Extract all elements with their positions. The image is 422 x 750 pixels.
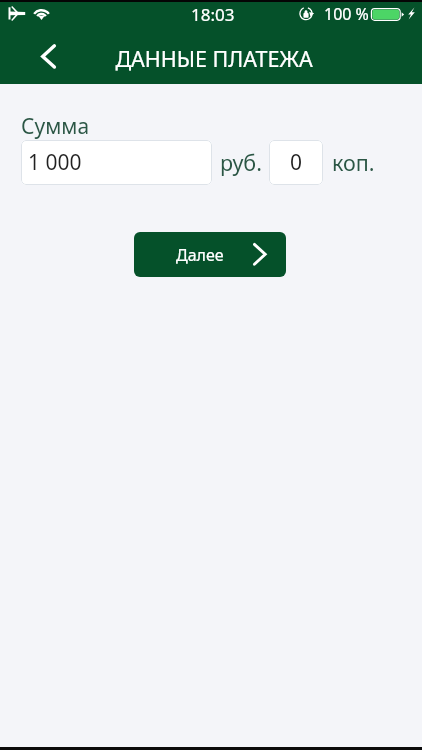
staticText: 0 <box>290 148 303 177</box>
button[interactable]: Back <box>20 32 74 80</box>
staticText: Сумма <box>21 112 90 141</box>
staticText: 18:03 <box>191 3 235 26</box>
staticText: 1 000 <box>28 148 82 177</box>
button[interactable]: 0 <box>269 140 323 185</box>
button[interactable]: Далее <box>134 232 286 277</box>
staticText: Далее <box>176 244 224 266</box>
button[interactable]: 1 000 <box>21 140 212 185</box>
staticText: руб. <box>220 148 262 177</box>
staticText: 100 % <box>324 3 369 25</box>
staticText: ДАННЫЕ ПЛАТЕЖА <box>115 44 313 73</box>
staticText: коп. <box>332 148 375 177</box>
